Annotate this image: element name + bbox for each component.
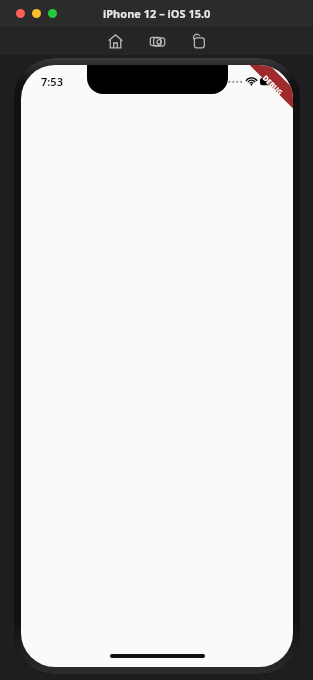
button[interactable]: Minimize	[32, 9, 41, 18]
button[interactable]: Rotate	[188, 30, 210, 52]
staticText: 7:53	[41, 74, 63, 89]
button[interactable]: Home	[104, 30, 126, 52]
button[interactable]: Maximize	[48, 9, 57, 18]
button[interactable]: Close	[16, 9, 25, 18]
button[interactable]: Screenshot	[146, 30, 168, 52]
staticText: DEBUG	[260, 74, 285, 98]
staticText: iPhone 12 – iOS 15.0	[103, 6, 211, 21]
